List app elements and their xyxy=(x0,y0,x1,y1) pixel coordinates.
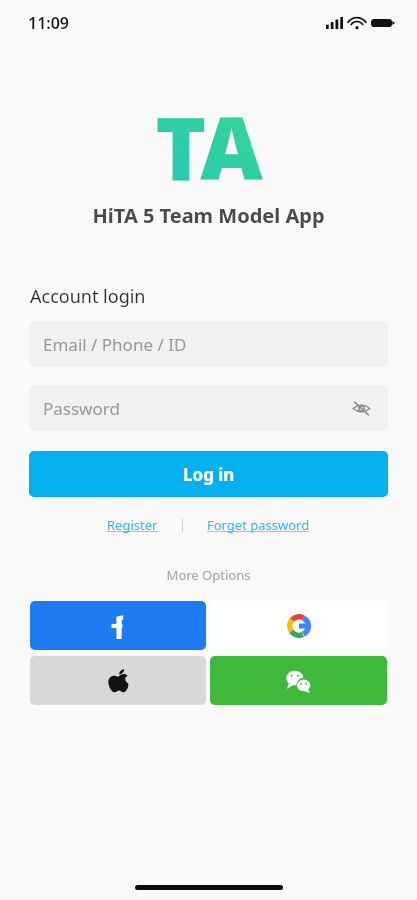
button[interactable]: Email / Phone / ID xyxy=(29,321,388,367)
staticText: TA xyxy=(155,88,263,186)
staticText: Register xyxy=(107,516,158,534)
button[interactable]: Sign in with Google xyxy=(210,601,387,650)
staticText: Account login xyxy=(30,284,146,309)
staticText: Forget password xyxy=(207,516,310,534)
button[interactable]: Password xyxy=(29,385,388,431)
staticText: HiTA 5 Team Model App xyxy=(0,202,417,229)
button[interactable]: Forget password xyxy=(203,514,314,536)
button[interactable]: Register xyxy=(103,514,162,536)
staticText: More Options xyxy=(0,566,417,584)
button[interactable]: Sign in with WeChat xyxy=(210,656,387,705)
staticText: Log in xyxy=(183,463,235,486)
button[interactable]: Sign in with Apple xyxy=(30,656,206,705)
button[interactable]: Log in xyxy=(29,451,388,497)
button[interactable]: Show password xyxy=(344,391,378,425)
button[interactable]: Sign in with Facebook xyxy=(30,601,206,650)
staticText: 11:09 xyxy=(28,12,70,34)
staticText: Email / Phone / ID xyxy=(43,333,187,356)
staticText: Password xyxy=(43,397,120,420)
